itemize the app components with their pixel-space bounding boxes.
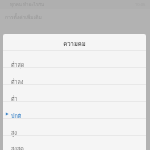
button[interactable]: ปกติ: [3, 102, 146, 118]
staticText: ทุกคน ทำอะไรกัน: [10, 1, 45, 8]
staticText: สูง: [11, 129, 17, 138]
staticText: การตั้งค่าเพิ่มเติม: [5, 13, 42, 21]
button[interactable]: ต่ำสุด: [3, 51, 146, 67]
button[interactable]: ต่ำ: [3, 85, 146, 101]
staticText: สูงสุด: [11, 145, 24, 150]
button[interactable]: สูง: [3, 119, 146, 135]
staticText: ปกติ: [11, 112, 22, 121]
button[interactable]: ต่ำลง: [3, 68, 146, 84]
staticText: ความคม: [63, 39, 86, 48]
staticText: ต่ำสุด: [11, 61, 25, 70]
button[interactable]: สูงสุด: [3, 136, 146, 150]
staticText: ต่ำลง: [11, 78, 24, 87]
staticText: ต่ำ: [11, 95, 18, 104]
